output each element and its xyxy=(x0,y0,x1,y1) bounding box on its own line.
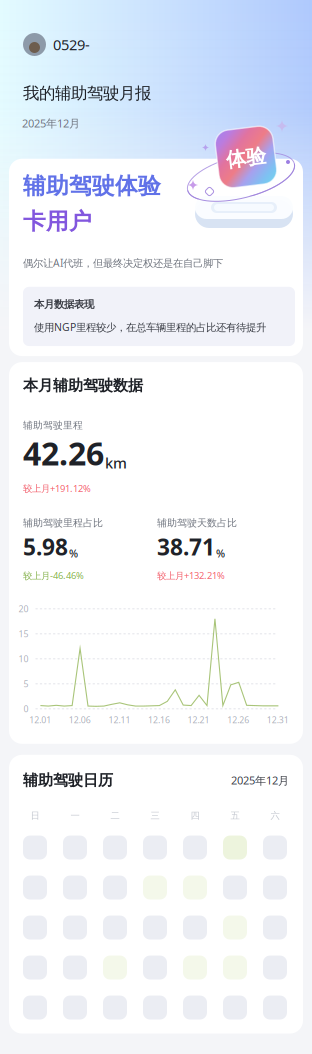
staticText: 12.21 xyxy=(188,714,210,726)
staticText: 日 xyxy=(30,810,39,822)
staticText: 12.01 xyxy=(29,714,51,726)
staticText: 5 xyxy=(23,678,28,690)
staticText: 四 xyxy=(190,810,199,822)
staticText: 0 xyxy=(23,703,28,715)
staticText: 12.16 xyxy=(148,714,170,726)
staticText: 辅助驾驶里程 xyxy=(23,419,83,431)
staticText: 体验 xyxy=(226,145,266,171)
staticText: 二 xyxy=(110,810,119,822)
staticText: 0529- xyxy=(53,34,90,54)
staticText: 12.06 xyxy=(69,714,91,726)
staticText: 本月数据表现 xyxy=(34,298,94,311)
staticText: 42.26 xyxy=(23,431,104,475)
staticText: 5.98 xyxy=(23,531,68,562)
staticText: 偶尔让AI代班，但最终决定权还是在自己脚下 xyxy=(23,256,223,270)
staticText: 六 xyxy=(270,810,279,822)
staticText: 五 xyxy=(230,810,239,822)
staticText: 辅助驾驶日历 xyxy=(23,771,113,790)
staticText: 一 xyxy=(70,810,79,822)
staticText: 12.31 xyxy=(267,714,289,726)
staticText: 2025年12月 xyxy=(231,773,289,788)
staticText: 较上月+132.21% xyxy=(157,569,225,582)
staticText: 辅助驾驶天数占比 xyxy=(157,517,237,529)
staticText: 三 xyxy=(150,810,159,822)
staticText: 12.11 xyxy=(108,714,130,726)
staticText: 38.71 xyxy=(157,531,215,562)
staticText: km xyxy=(105,453,127,473)
staticText: 使用NGP里程较少，在总车辆里程的占比还有待提升 xyxy=(34,320,266,334)
staticText: % xyxy=(216,546,225,561)
staticText: 20 xyxy=(18,603,28,615)
staticText: 2025年12月 xyxy=(22,116,80,131)
staticText: 我的辅助驾驶月报 xyxy=(23,83,151,104)
staticText: 辅助驾驶体验 xyxy=(23,172,161,200)
staticText: 较上月-46.46% xyxy=(23,569,84,582)
staticText: 较上月+191.12% xyxy=(23,482,91,495)
staticText: 15 xyxy=(18,628,28,640)
staticText: 卡用户 xyxy=(23,207,92,236)
staticText: 辅助驾驶里程占比 xyxy=(23,517,103,529)
staticText: % xyxy=(69,546,78,561)
staticText: 10 xyxy=(18,653,28,665)
staticText: 12.26 xyxy=(227,714,249,726)
staticText: 本月辅助驾驶数据 xyxy=(23,376,143,395)
button[interactable]: 0529- xyxy=(0,0,90,56)
